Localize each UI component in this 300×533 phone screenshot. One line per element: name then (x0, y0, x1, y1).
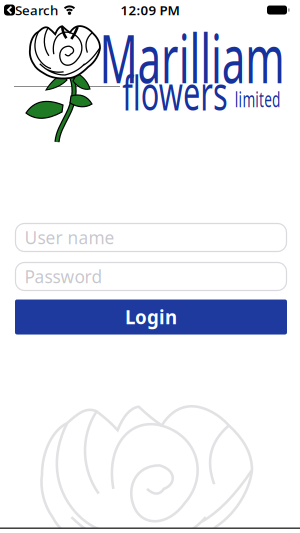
staticText: Password (24, 265, 102, 288)
staticText: User name (24, 226, 114, 249)
button[interactable]: User name (15, 223, 286, 251)
staticText: Login (125, 305, 177, 329)
staticText: Marilliam (46, 13, 300, 102)
staticText: limited (222, 85, 293, 113)
button[interactable]: Login (15, 299, 287, 334)
staticText: flowers (92, 60, 257, 124)
staticText: 12:09 PM (120, 1, 179, 19)
staticText: Search (15, 1, 58, 19)
button[interactable]: Password (15, 262, 286, 290)
button[interactable]: Back to Search (0, 0, 58, 20)
